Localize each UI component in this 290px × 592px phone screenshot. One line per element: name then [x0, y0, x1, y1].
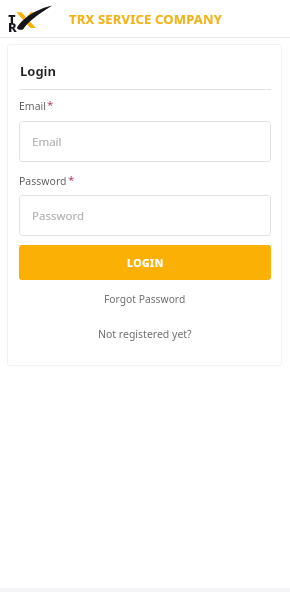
button[interactable]: LOGIN: [19, 245, 271, 280]
staticText: *: [47, 97, 54, 113]
staticText: T: [8, 10, 16, 28]
staticText: R: [8, 18, 17, 36]
button[interactable]: Email: [19, 121, 271, 162]
staticText: *: [68, 172, 75, 188]
staticText: Email: [32, 134, 62, 150]
staticText: Login: [20, 62, 56, 80]
staticText: Not registered yet?: [98, 327, 192, 341]
button[interactable]: Password: [19, 195, 271, 236]
staticText: Forgot Password: [104, 292, 186, 306]
button[interactable]: Forgot Password: [19, 289, 271, 309]
button[interactable]: Not registered yet?: [19, 324, 271, 344]
staticText: Password: [19, 174, 67, 188]
staticText: Password: [32, 208, 85, 224]
staticText: LOGIN: [127, 256, 164, 270]
other: TRX Service Company logo: [0, 0, 53, 36]
staticText: Email: [19, 99, 46, 113]
staticText: TRX SERVICE COMPANY: [69, 10, 223, 28]
